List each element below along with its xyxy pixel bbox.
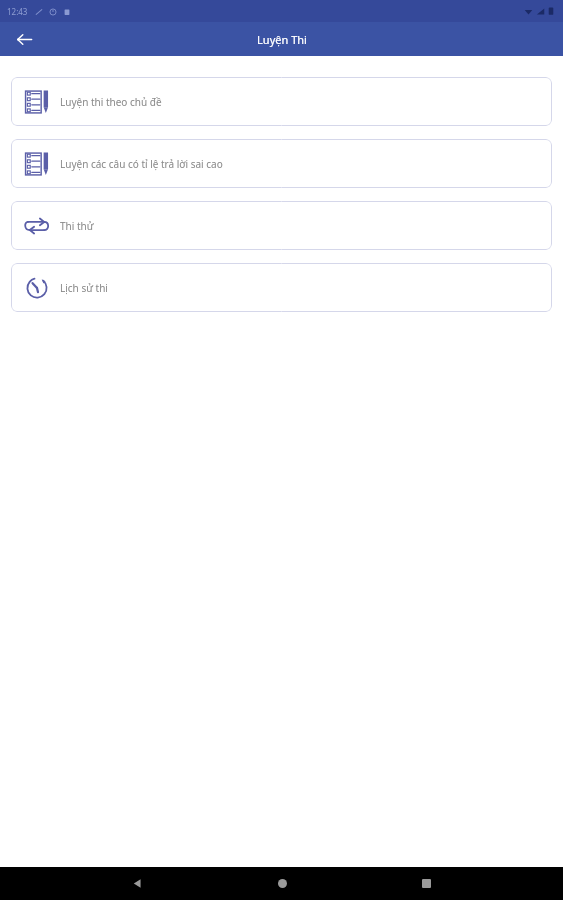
staticText: Luyện các câu có tỉ lệ trả lời sai cao: [60, 157, 223, 171]
button[interactable]: Lịch sử thi: [11, 263, 552, 312]
staticText: Lịch sử thi: [60, 281, 108, 295]
button[interactable]: Home: [265, 867, 299, 900]
button[interactable]: Recent apps: [409, 867, 443, 900]
button[interactable]: Luyện các câu có tỉ lệ trả lời sai cao: [11, 139, 552, 188]
staticText: 12:43: [7, 6, 28, 17]
button[interactable]: Back: [120, 867, 154, 900]
staticText: Luyện thi theo chủ đề: [60, 95, 162, 109]
staticText: Thi thử: [60, 219, 94, 233]
button[interactable]: Thi thử: [11, 201, 552, 250]
staticText: Luyện Thi: [257, 32, 307, 47]
button[interactable]: Luyện thi theo chủ đề: [11, 77, 552, 126]
button[interactable]: Back: [10, 25, 38, 53]
